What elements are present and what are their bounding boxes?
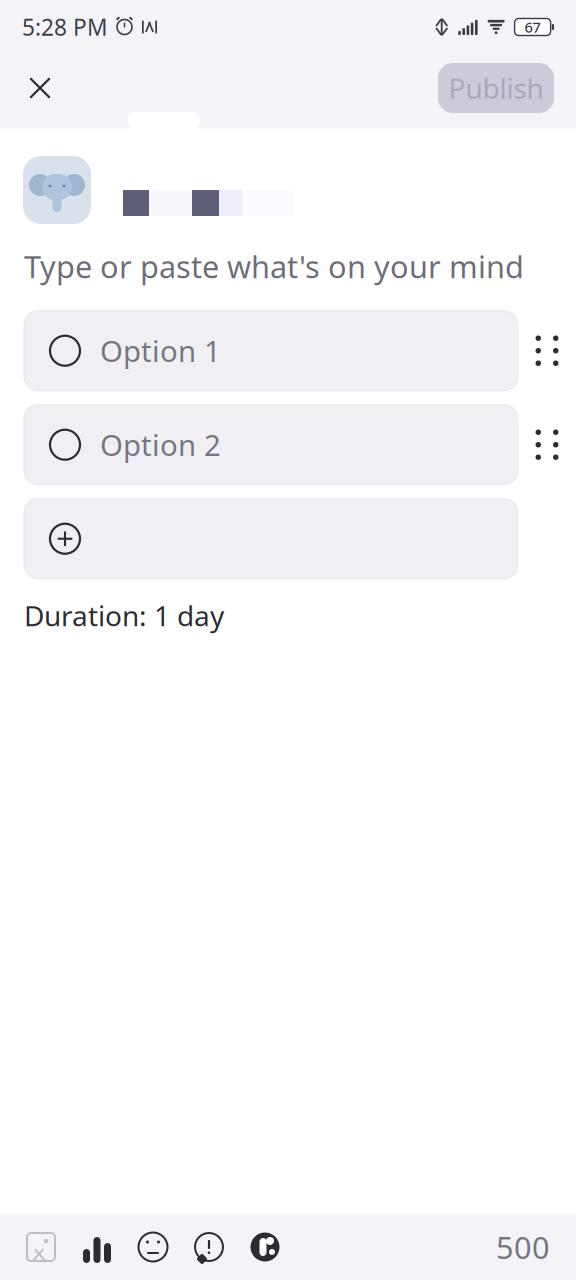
button[interactable]: Add option — [24, 499, 518, 579]
button[interactable]: Close — [14, 62, 66, 114]
staticText: Option 2 — [100, 425, 221, 464]
staticText: Option 1 — [100, 331, 221, 370]
button[interactable]: Reorder Option 2 — [518, 405, 576, 485]
button[interactable]: Reorder Option 1 — [518, 311, 576, 391]
staticText: Duration: 1 day — [24, 597, 224, 634]
button[interactable]: Add image — [13, 1214, 69, 1280]
button[interactable]: Visibility — [237, 1214, 293, 1280]
button[interactable]: Content warning — [181, 1214, 237, 1280]
button[interactable]: Insert emoji — [125, 1214, 181, 1280]
staticText: Publish — [448, 69, 543, 107]
button[interactable]: Option 2 — [24, 405, 518, 485]
button[interactable]: Option 1 — [24, 311, 518, 391]
button[interactable]: Duration: 1 day — [24, 597, 224, 634]
button[interactable]: Add poll — [69, 1214, 125, 1280]
staticText: Type or paste what's on your mind — [24, 246, 524, 287]
staticText: 67 — [525, 17, 541, 37]
button[interactable]: Publish — [438, 63, 554, 113]
staticText: 5:28 PM — [22, 12, 108, 42]
staticText: 500 — [496, 1227, 550, 1267]
